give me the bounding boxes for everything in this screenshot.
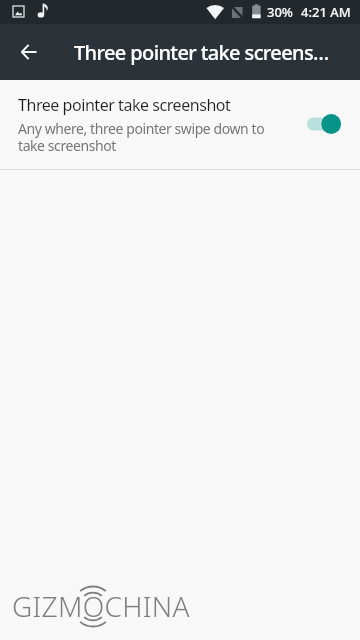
staticText: Three pointer take screenshot	[74, 39, 338, 66]
button[interactable]: Three pointer take screenshot, on	[307, 114, 341, 134]
staticText: 30%	[267, 3, 293, 21]
button[interactable]: Three pointer take screenshot	[0, 80, 360, 170]
staticText: GIZMOCHINA	[12, 587, 190, 625]
button[interactable]: Navigate up	[0, 24, 57, 80]
staticText: Three pointer take screenshot	[18, 94, 231, 116]
staticText: Any where, three pointer swipe down to t…	[18, 119, 289, 155]
staticText: 4:21 AM	[301, 3, 351, 21]
